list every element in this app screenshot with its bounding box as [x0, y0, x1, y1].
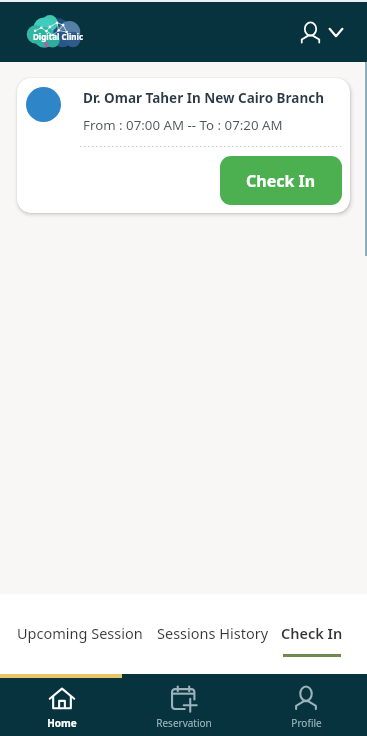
button[interactable]: Account: [297, 19, 323, 45]
button[interactable]: Check In: [220, 156, 342, 205]
staticText: Digital Clinic: [33, 31, 84, 42]
button[interactable]: Reservation: [123, 678, 245, 736]
staticText: Check In: [281, 623, 343, 643]
button[interactable]: Home: [0, 678, 123, 736]
button[interactable]: Sessions History: [157, 623, 269, 654]
button[interactable]: Profile: [245, 678, 367, 736]
button[interactable]: Open account menu: [323, 19, 349, 45]
staticText: Upcoming Session: [17, 623, 143, 643]
button[interactable]: Check In: [281, 623, 343, 657]
staticText: Check In: [246, 170, 316, 192]
button[interactable]: Dr. Omar Taher In New Cairo Branch: [17, 78, 350, 213]
staticText: Sessions History: [157, 623, 269, 643]
staticText: Dr. Omar Taher In New Cairo Branch: [83, 89, 324, 107]
button[interactable]: Upcoming Session: [17, 623, 143, 654]
staticText: Reservation: [156, 716, 212, 730]
staticText: From : 07:00 AM -- To : 07:20 AM: [83, 116, 283, 134]
staticText: Home: [47, 716, 77, 730]
staticText: Profile: [291, 716, 322, 730]
